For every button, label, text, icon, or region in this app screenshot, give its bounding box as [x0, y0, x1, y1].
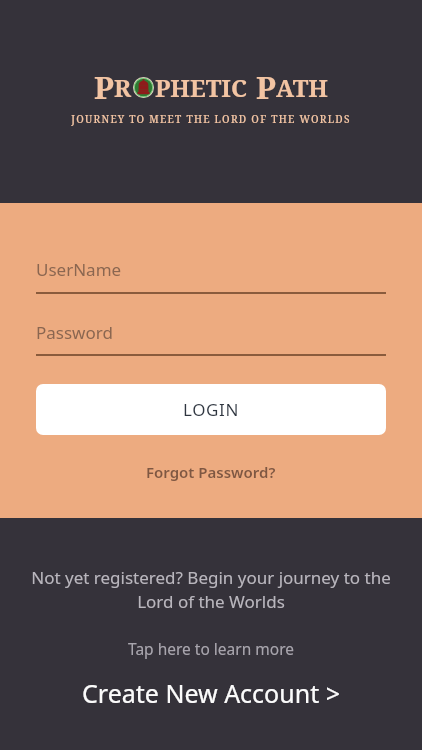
button[interactable]: UserName: [36, 258, 386, 294]
staticText: P: [256, 66, 276, 108]
button[interactable]: Forgot Password?: [140, 460, 282, 484]
staticText: PHETIC: [155, 71, 247, 104]
staticText: JOURNEY TO MEET THE LORD OF THE WORLDS: [71, 112, 351, 126]
staticText: Forgot Password?: [146, 462, 276, 482]
staticText: ATH: [276, 71, 328, 104]
button[interactable]: Create New Account >: [72, 673, 350, 713]
staticText: UserName: [36, 258, 122, 281]
button[interactable]: Tap here to learn more: [120, 636, 302, 661]
staticText: Not yet registered? Begin your journey t…: [24, 566, 398, 613]
staticText: LOGIN: [183, 398, 239, 421]
staticText: P: [94, 66, 114, 108]
staticText: Tap here to learn more: [128, 638, 294, 659]
button[interactable]: LOGIN: [36, 384, 386, 435]
staticText: Password: [36, 321, 113, 344]
staticText: Create New Account >: [82, 676, 340, 710]
button[interactable]: Password: [36, 321, 386, 356]
staticText: R: [114, 71, 132, 104]
